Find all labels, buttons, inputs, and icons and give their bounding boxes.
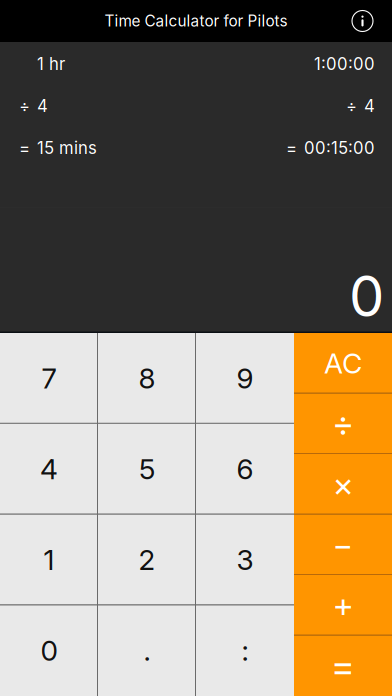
staticText: 8 xyxy=(138,361,155,395)
staticText: 1 hr xyxy=(37,54,65,74)
staticText: ÷ xyxy=(332,403,354,445)
button[interactable]: 9 xyxy=(196,333,294,424)
button[interactable]: 8 xyxy=(98,333,196,424)
staticText: 2 xyxy=(138,543,155,577)
staticText: 4 xyxy=(37,96,48,116)
staticText: = xyxy=(19,138,30,158)
staticText: 9 xyxy=(236,361,253,395)
button[interactable]: Minus xyxy=(294,514,392,575)
button[interactable]: All clear xyxy=(294,333,392,393)
button[interactable]: Decimal point xyxy=(98,605,196,696)
staticText: 7 xyxy=(41,361,56,395)
staticText: + xyxy=(332,585,353,625)
staticText: ÷ xyxy=(19,96,30,116)
button[interactable]: Info xyxy=(333,0,392,42)
staticText: 6 xyxy=(236,452,253,486)
staticText: 15 mins xyxy=(37,138,97,158)
staticText: 0 xyxy=(349,262,384,330)
staticText: ÷ xyxy=(346,96,357,116)
staticText: 4 xyxy=(364,96,375,116)
button[interactable]: 2 xyxy=(98,514,196,605)
button[interactable]: 1 xyxy=(0,514,98,605)
staticText: = xyxy=(286,138,297,158)
staticText: . xyxy=(143,634,150,668)
button[interactable]: 4 xyxy=(0,424,98,515)
staticText: 0 xyxy=(40,634,57,668)
staticText: : xyxy=(241,634,248,668)
button[interactable]: 0 xyxy=(0,605,98,696)
staticText: 00:15:00 xyxy=(304,138,375,158)
staticText: 3 xyxy=(236,543,253,577)
staticText: 1 xyxy=(43,543,54,577)
button[interactable]: Colon xyxy=(196,605,294,696)
staticText: = xyxy=(331,643,355,688)
staticText: 5 xyxy=(139,452,155,486)
button[interactable]: 3 xyxy=(196,514,294,605)
button[interactable]: Plus xyxy=(294,575,392,635)
staticText: AC xyxy=(324,346,362,380)
staticText: Time Calculator for Pilots xyxy=(104,12,287,30)
staticText: 1:00:00 xyxy=(314,54,375,74)
staticText: − xyxy=(332,525,353,564)
button[interactable]: 6 xyxy=(196,424,294,515)
button[interactable]: Equals xyxy=(294,635,392,696)
button[interactable]: Divide xyxy=(294,393,392,454)
button[interactable]: 7 xyxy=(0,333,98,424)
staticText: 4 xyxy=(40,452,58,486)
button[interactable]: Multiply xyxy=(294,454,392,514)
staticText: × xyxy=(332,464,353,504)
button[interactable]: 5 xyxy=(98,424,196,515)
